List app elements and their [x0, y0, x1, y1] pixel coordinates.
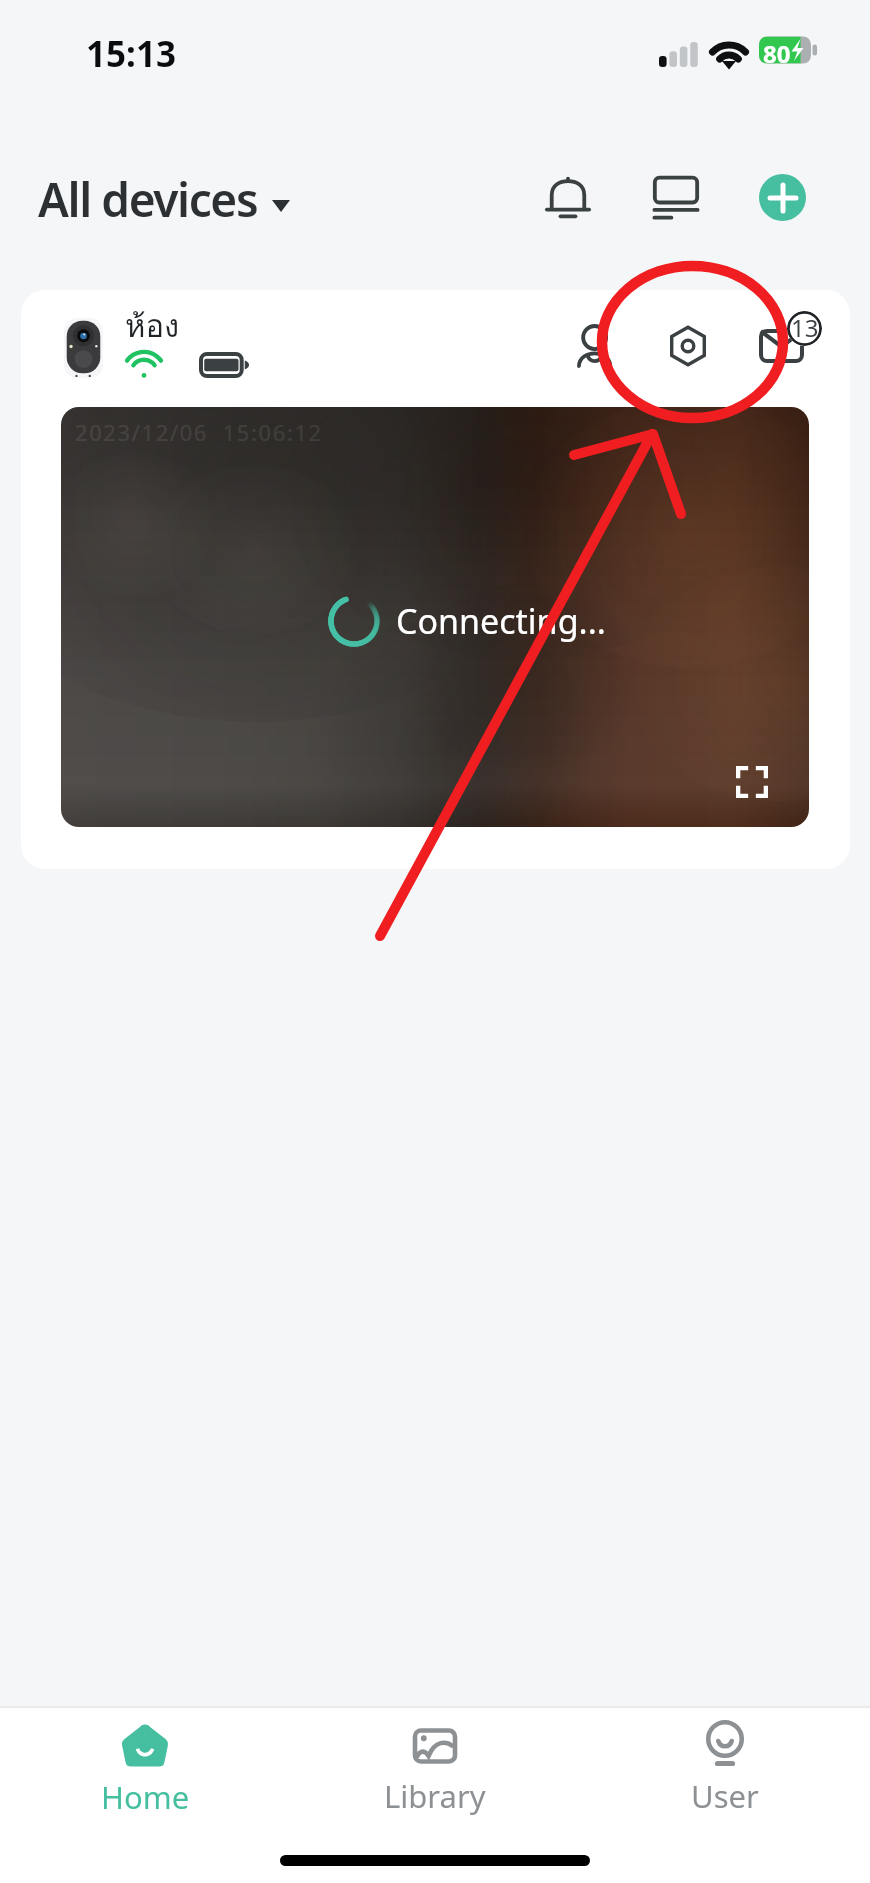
button[interactable]: All devices: [38, 168, 290, 231]
button[interactable]: Messages: [751, 316, 811, 376]
staticText: ห้อง: [125, 301, 180, 350]
button[interactable]: Library: [290, 1708, 580, 1827]
staticText: Connecting...: [396, 598, 606, 644]
staticText: 80: [763, 37, 791, 70]
button[interactable]: Share: [564, 316, 624, 376]
button[interactable]: Cast: [640, 161, 712, 233]
staticText: 2023/12/06 15:06:12: [75, 417, 323, 447]
staticText: User: [691, 1775, 759, 1817]
button[interactable]: User: [580, 1708, 870, 1827]
button[interactable]: ห้อง: [21, 290, 850, 869]
staticText: Home: [101, 1776, 190, 1818]
button[interactable]: Home: [0, 1708, 290, 1827]
button[interactable]: Notifications: [532, 161, 604, 233]
staticText: 13: [791, 311, 819, 344]
staticText: Library: [384, 1775, 486, 1817]
staticText: All devices: [38, 168, 258, 231]
button[interactable]: Settings: [658, 316, 718, 376]
staticText: 15:13: [86, 30, 176, 78]
button[interactable]: Fullscreen: [722, 752, 782, 812]
button[interactable]: Add device: [759, 174, 806, 221]
